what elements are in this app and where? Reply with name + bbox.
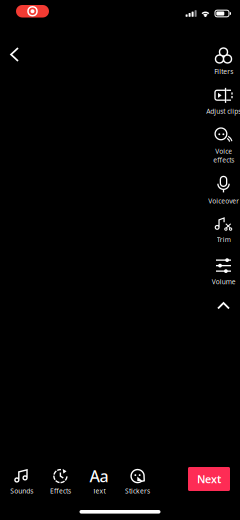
button[interactable]: Volume [204, 258, 240, 286]
staticText: Aa [89, 465, 108, 487]
staticText: Sounds [10, 487, 33, 495]
button[interactable]: Next [188, 467, 230, 491]
button[interactable]: Voiceover [204, 176, 240, 205]
button[interactable]: Adjust clips [204, 88, 240, 116]
button[interactable]: Voice effects [204, 128, 240, 164]
button[interactable]: Sounds [3, 467, 41, 498]
staticText: Trim [216, 235, 230, 244]
button[interactable]: Stickers [119, 467, 157, 498]
button[interactable]: Back [0, 22, 29, 70]
button[interactable]: Collapse tools [206, 295, 240, 316]
staticText: Voiceover [208, 196, 239, 205]
staticText: Adjust clips [206, 107, 240, 116]
staticText: Next [197, 472, 221, 486]
button[interactable]: Aa [80, 467, 118, 498]
button[interactable]: Filters [204, 48, 240, 76]
staticText: Effects [50, 487, 71, 495]
staticText: Stickers [125, 487, 150, 495]
staticText: Voice effects [213, 147, 234, 164]
button[interactable]: Trim [204, 216, 240, 244]
staticText: Filters [214, 67, 233, 76]
staticText: Volume [211, 277, 235, 286]
staticText: Text [92, 487, 105, 495]
button[interactable]: Effects [41, 467, 79, 498]
